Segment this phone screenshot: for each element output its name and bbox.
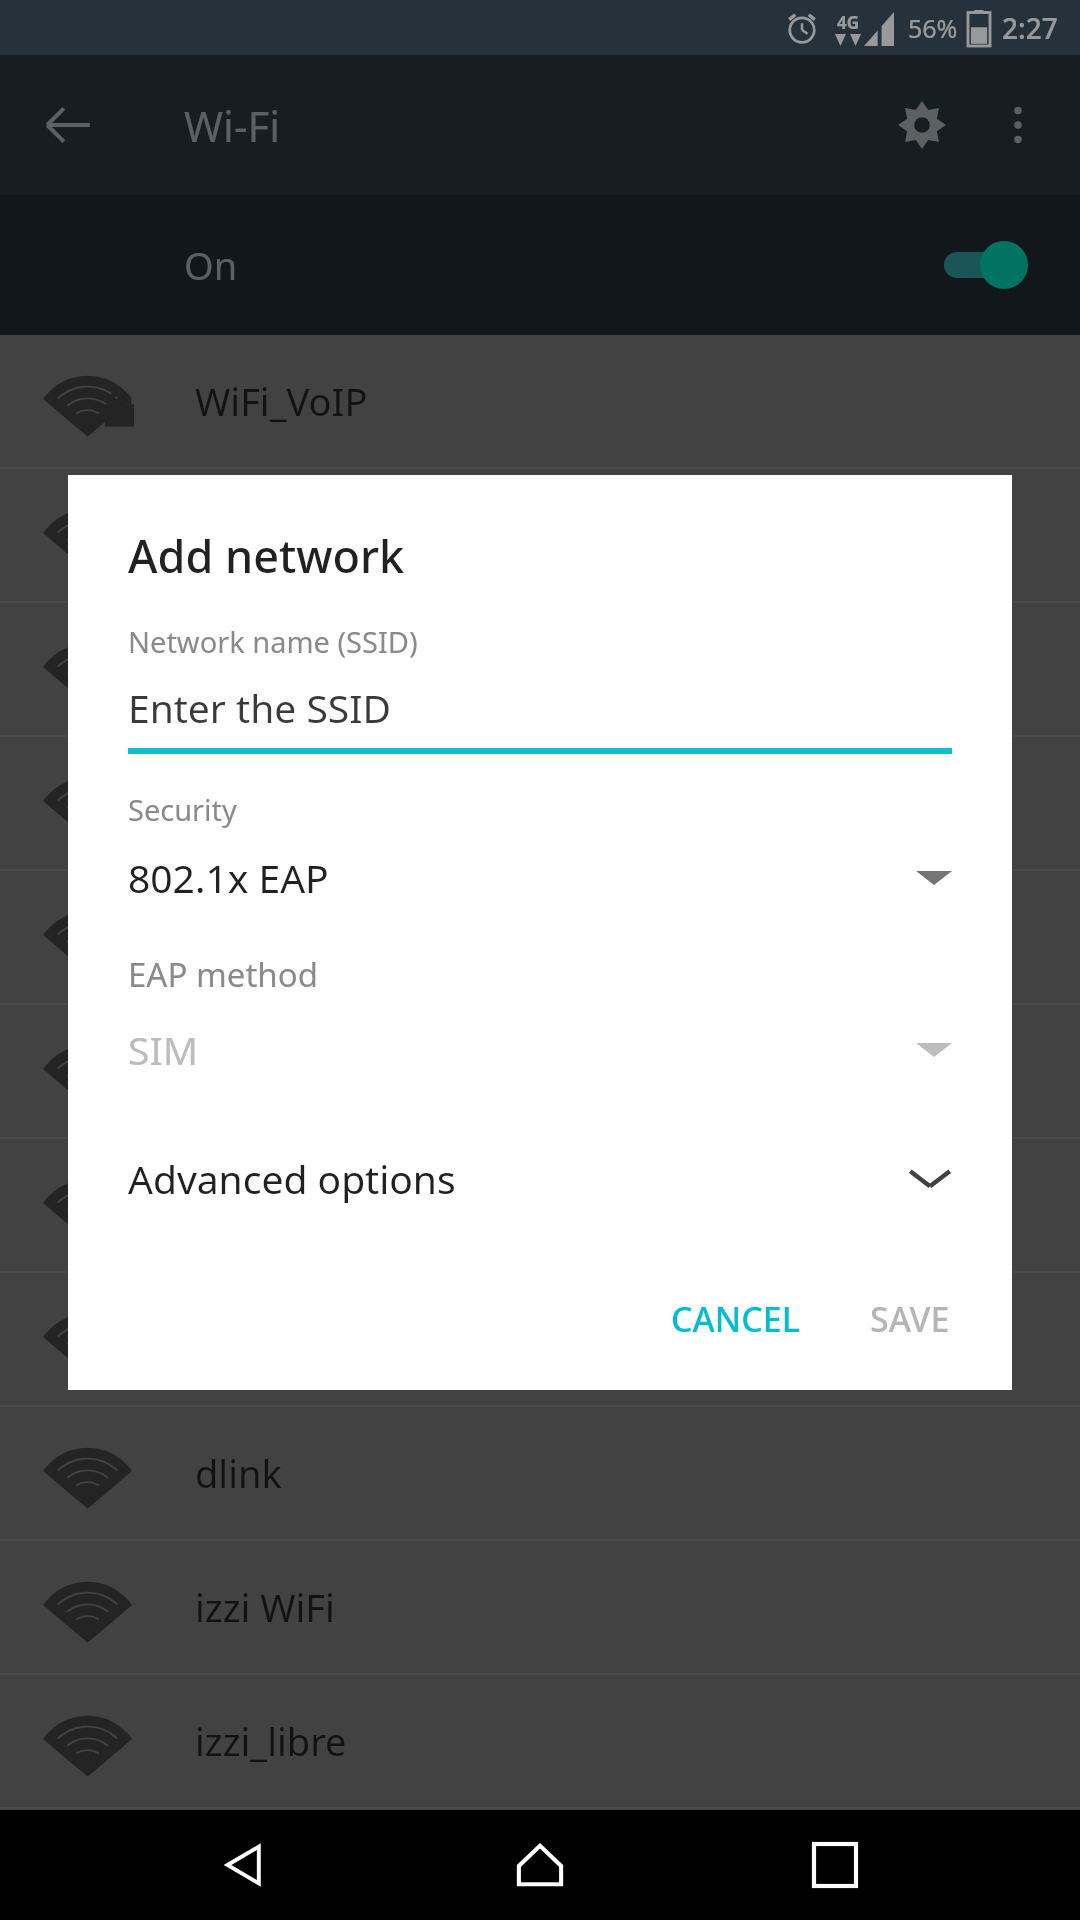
staticText: Enter the SSID bbox=[128, 681, 391, 734]
button[interactable]: 802.1x EAP bbox=[128, 851, 952, 904]
button[interactable]: Advanced options bbox=[128, 1138, 956, 1218]
staticText: Add network bbox=[128, 525, 405, 586]
staticText: EAP method bbox=[128, 952, 319, 997]
staticText: Security bbox=[128, 790, 237, 829]
button[interactable] bbox=[0, 603, 1080, 735]
button[interactable]: izzi WiFi bbox=[0, 1541, 1080, 1673]
button[interactable]: Back bbox=[195, 1815, 295, 1915]
button[interactable]: CANCEL bbox=[649, 1278, 822, 1360]
staticText: Advanced options bbox=[128, 1152, 456, 1205]
button[interactable] bbox=[0, 1139, 1080, 1271]
staticText: Wi-Fi bbox=[184, 97, 281, 154]
button[interactable]: Back bbox=[30, 87, 106, 163]
staticText: 56% bbox=[908, 11, 958, 45]
button[interactable]: On bbox=[0, 195, 1080, 335]
staticText: 2:27 bbox=[1002, 9, 1058, 47]
staticText: CANCEL bbox=[671, 1296, 800, 1342]
button[interactable]: WiFi_VoIP bbox=[0, 335, 1080, 467]
button[interactable] bbox=[0, 469, 1080, 601]
button[interactable]: Settings bbox=[884, 87, 960, 163]
staticText: izzi_libre bbox=[195, 1715, 347, 1767]
button[interactable]: SAVE bbox=[848, 1278, 972, 1360]
button[interactable]: Enter the SSID bbox=[128, 681, 952, 754]
button[interactable]: Recents bbox=[785, 1815, 885, 1915]
staticText: 4G bbox=[837, 11, 860, 34]
button[interactable]: izzi_libre bbox=[0, 1675, 1080, 1807]
button[interactable] bbox=[0, 737, 1080, 869]
staticText: SIM bbox=[128, 1023, 199, 1076]
button[interactable]: SIM bbox=[128, 1023, 952, 1076]
staticText: On bbox=[184, 239, 238, 291]
button[interactable]: dlink bbox=[0, 1407, 1080, 1539]
staticText: 802.1x EAP bbox=[128, 851, 329, 904]
button[interactable]: More options bbox=[980, 87, 1056, 163]
staticText: izzi WiFi bbox=[195, 1581, 335, 1633]
staticText: WiFi_VoIP bbox=[195, 375, 368, 427]
staticText: dlink bbox=[195, 1447, 282, 1499]
staticText: SAVE bbox=[870, 1296, 950, 1342]
staticText: Network name (SSID) bbox=[128, 622, 418, 661]
button[interactable] bbox=[0, 1005, 1080, 1137]
button[interactable] bbox=[0, 1273, 1080, 1405]
button[interactable]: Home bbox=[490, 1815, 590, 1915]
button[interactable] bbox=[0, 871, 1080, 1003]
